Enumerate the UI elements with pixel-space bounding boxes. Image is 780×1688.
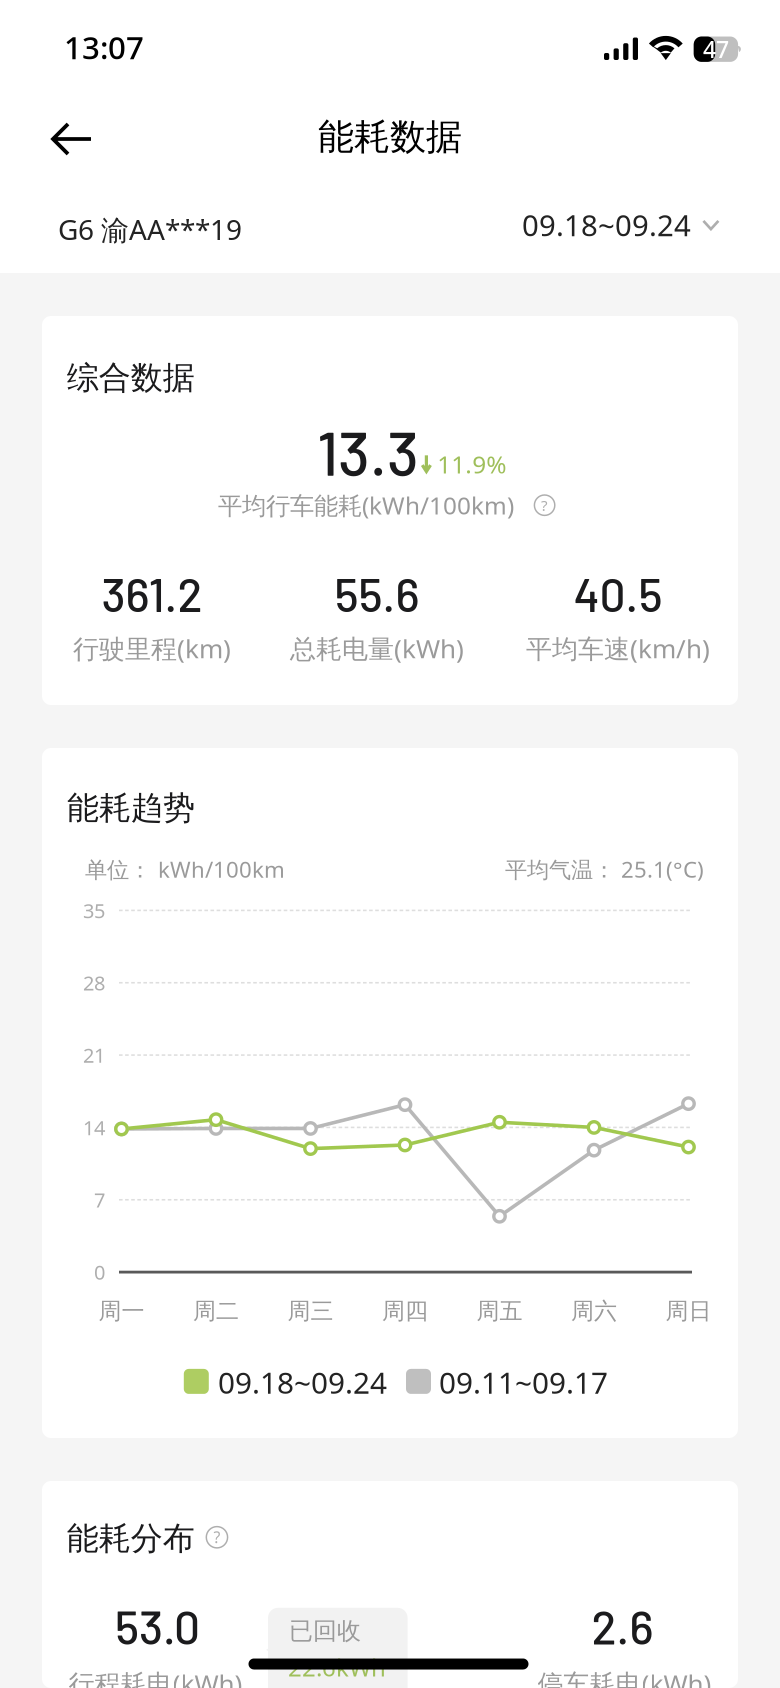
staticText: 周日 (665, 1296, 711, 1325)
staticText: 09.18~09.24 (218, 1362, 387, 1402)
staticText: 平均气温： 25.1(°C) (505, 854, 704, 884)
staticText: 35 (83, 897, 105, 924)
staticText: 能耗分布 (67, 1518, 195, 1559)
button[interactable]: Back (33, 106, 111, 172)
staticText: ? (213, 1526, 220, 1548)
staticText: 周一 (98, 1296, 144, 1325)
staticText: ? (541, 495, 548, 515)
staticText: 7 (94, 1186, 105, 1213)
staticText: G6 渝AA***19 (58, 210, 242, 248)
staticText: 2.6 (592, 1598, 654, 1654)
staticText: 平均车速(km/h) (526, 630, 710, 666)
staticText: 0 (94, 1258, 105, 1286)
staticText: 能耗数据 (318, 114, 462, 160)
staticText: 47 (703, 33, 729, 65)
staticText: 周二 (193, 1296, 239, 1325)
staticText: 13:07 (64, 26, 144, 68)
staticText: 28 (83, 969, 105, 996)
staticText: 40.5 (573, 566, 662, 621)
staticText: 总耗电量(kWh) (290, 630, 464, 666)
staticText: 14 (83, 1114, 105, 1141)
staticText: 11.9% (437, 447, 506, 481)
staticText: 平均行车能耗(kWh/100km) (218, 488, 514, 522)
staticText: 周六 (571, 1296, 617, 1325)
staticText: 55.6 (334, 566, 419, 621)
staticText: 已回收 (289, 1616, 361, 1646)
button[interactable]: 09.18~09.24 (518, 196, 724, 254)
staticText: 53.0 (115, 1598, 200, 1654)
staticText: 周五 (476, 1296, 522, 1325)
staticText: 停车耗电(kWh) (538, 1666, 712, 1688)
staticText: 09.18~09.24 (522, 205, 691, 245)
staticText: 09.11~09.17 (439, 1362, 608, 1402)
staticText: 13.3 (317, 415, 419, 488)
staticText: 行程耗电(kWh) (68, 1666, 242, 1688)
staticText: 22.6kWh (288, 1651, 386, 1683)
staticText: 综合数据 (67, 358, 195, 398)
staticText: 361.2 (101, 566, 202, 621)
staticText: 周三 (287, 1296, 333, 1325)
staticText: 单位： kWh/100km (85, 854, 285, 884)
staticText: 周四 (382, 1296, 428, 1325)
staticText: 21 (83, 1041, 105, 1069)
staticText: 行驶里程(km) (73, 630, 231, 666)
staticText: 能耗趋势 (67, 788, 195, 828)
